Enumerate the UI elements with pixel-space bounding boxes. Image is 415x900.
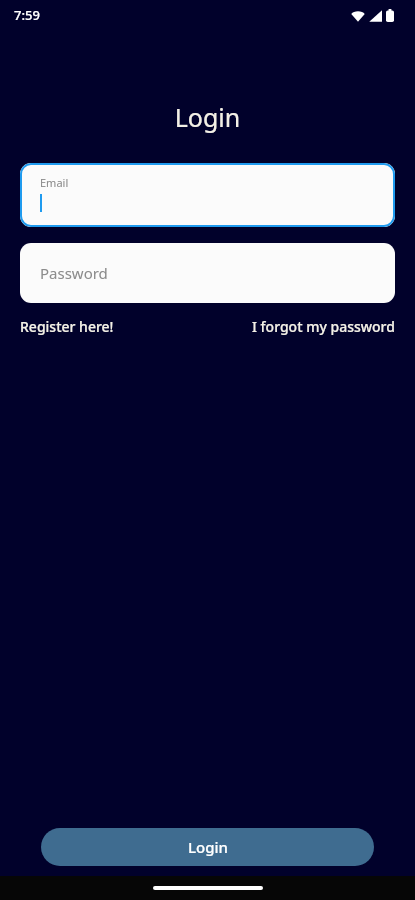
staticText: Email [40,175,69,190]
staticText: Login [188,837,228,857]
staticText: 7:59 [14,6,40,24]
button[interactable]: I forgot my password [252,317,395,336]
button[interactable]: Email [20,163,395,227]
staticText: I forgot my password [252,317,395,336]
button[interactable]: Login [41,828,374,866]
other: Mobile signal [369,10,382,22]
staticText: Login [0,100,415,134]
other: Wi-Fi [351,10,365,22]
button[interactable]: Password [20,243,395,303]
staticText: Password [40,263,108,283]
button[interactable]: Register here! [20,317,114,336]
staticText: Register here! [20,317,114,336]
other: Battery [386,9,394,22]
